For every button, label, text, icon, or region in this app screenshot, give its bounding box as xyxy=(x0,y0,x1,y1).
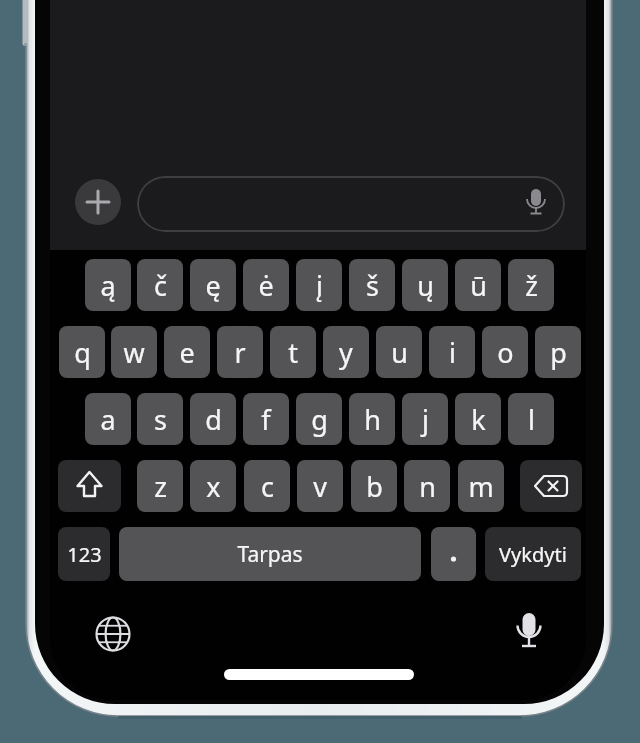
staticText: ž xyxy=(525,267,538,304)
button[interactable]: q xyxy=(59,326,105,378)
button[interactable]: Tarpas xyxy=(119,527,421,581)
button[interactable]: d xyxy=(190,393,236,445)
button[interactable] xyxy=(508,609,550,651)
button[interactable]: ų xyxy=(402,259,448,311)
staticText: r xyxy=(234,334,246,371)
button[interactable]: č xyxy=(137,259,183,311)
button[interactable]: v xyxy=(297,460,343,512)
button[interactable] xyxy=(58,460,121,512)
staticText: v xyxy=(313,468,327,505)
button[interactable]: g xyxy=(296,393,342,445)
staticText: e xyxy=(179,334,195,371)
button[interactable]: b xyxy=(351,460,397,512)
button[interactable]: m xyxy=(458,460,504,512)
staticText: l xyxy=(528,401,535,438)
button[interactable] xyxy=(520,460,582,512)
button[interactable]: z xyxy=(137,460,183,512)
staticText: Vykdyti xyxy=(499,541,567,568)
button[interactable] xyxy=(137,176,565,232)
staticText: w xyxy=(123,334,145,371)
staticText: i xyxy=(449,334,456,371)
button[interactable]: w xyxy=(111,326,157,378)
button[interactable]: t xyxy=(270,326,316,378)
button[interactable]: k xyxy=(455,393,501,445)
staticText: č xyxy=(154,267,167,304)
button[interactable]: į xyxy=(296,259,342,311)
button[interactable]: r xyxy=(217,326,263,378)
button[interactable]: Vykdyti xyxy=(485,527,581,581)
button[interactable]: y xyxy=(323,326,369,378)
staticText: m xyxy=(468,468,494,505)
staticText: ū xyxy=(470,267,487,304)
button[interactable]: ę xyxy=(190,259,236,311)
button[interactable]: ū xyxy=(455,259,501,311)
staticText: f xyxy=(261,401,271,438)
staticText: s xyxy=(154,401,167,438)
staticText: a xyxy=(100,401,116,438)
button[interactable]: j xyxy=(402,393,448,445)
button[interactable]: e xyxy=(164,326,210,378)
staticText: į xyxy=(316,267,323,304)
button[interactable]: p xyxy=(535,326,581,378)
staticText: 123 xyxy=(67,541,102,568)
staticText: b xyxy=(366,468,383,505)
staticText: Tarpas xyxy=(237,540,303,569)
staticText: z xyxy=(154,468,167,505)
button[interactable]: a xyxy=(85,393,131,445)
button[interactable]: l xyxy=(508,393,554,445)
button[interactable]: c xyxy=(244,460,290,512)
button[interactable]: ž xyxy=(508,259,554,311)
button[interactable]: n xyxy=(404,460,450,512)
staticText: p xyxy=(550,334,567,371)
button[interactable]: o xyxy=(482,326,528,378)
staticText: g xyxy=(311,401,328,438)
button[interactable]: š xyxy=(349,259,395,311)
staticText: j xyxy=(422,401,429,438)
staticText: h xyxy=(364,401,381,438)
button[interactable] xyxy=(431,527,476,581)
button[interactable]: s xyxy=(137,393,183,445)
button[interactable]: 123 xyxy=(58,527,110,581)
staticText: ą xyxy=(100,267,116,304)
staticText: ę xyxy=(205,267,221,304)
button[interactable] xyxy=(75,179,121,225)
staticText: t xyxy=(288,334,298,371)
staticText: u xyxy=(391,334,408,371)
button[interactable] xyxy=(224,669,414,680)
button[interactable]: f xyxy=(243,393,289,445)
staticText: c xyxy=(261,468,274,505)
staticText: y xyxy=(339,334,353,371)
staticText: ų xyxy=(417,267,434,304)
staticText: š xyxy=(366,267,379,304)
staticText: n xyxy=(419,468,436,505)
staticText: d xyxy=(205,401,222,438)
button[interactable]: h xyxy=(349,393,395,445)
staticText: q xyxy=(74,334,91,371)
staticText: ė xyxy=(258,267,274,304)
staticText: x xyxy=(206,468,221,505)
button[interactable]: u xyxy=(376,326,422,378)
button[interactable]: ą xyxy=(85,259,131,311)
button[interactable]: ė xyxy=(243,259,289,311)
staticText: o xyxy=(497,334,514,371)
button[interactable] xyxy=(92,613,134,655)
button[interactable]: i xyxy=(429,326,475,378)
staticText: k xyxy=(471,401,486,438)
button[interactable]: x xyxy=(190,460,236,512)
